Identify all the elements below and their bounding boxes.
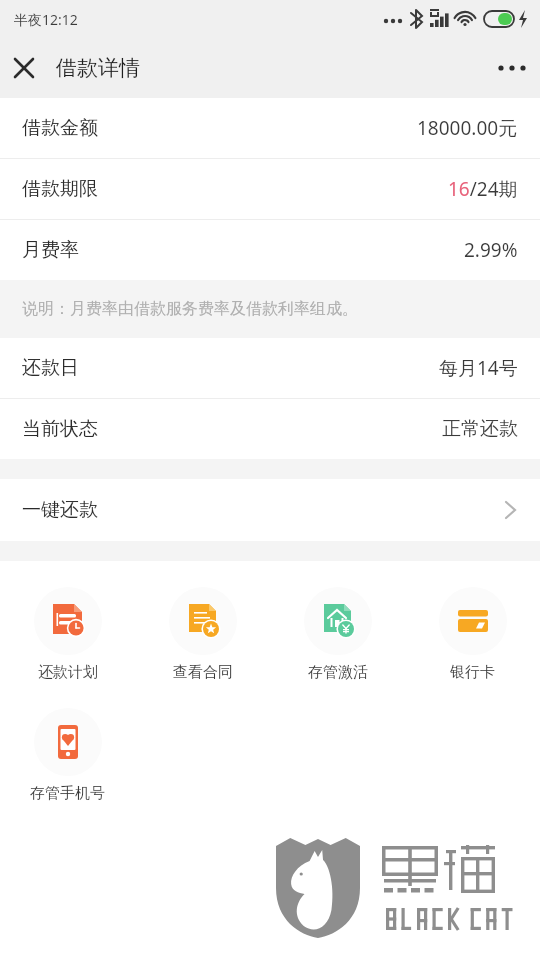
staticText: 银行卡	[450, 663, 495, 682]
button[interactable]: 一键还款	[0, 479, 540, 541]
staticText: 还款计划	[38, 663, 98, 682]
button[interactable]: 更多	[484, 40, 540, 96]
staticText: 当前状态	[22, 417, 98, 441]
staticText: 借款详情	[56, 55, 140, 81]
staticText: 说明：月费率由借款服务费率及借款利率组成。	[22, 299, 358, 319]
staticText: 查看合同	[173, 663, 233, 682]
staticText: 还款日	[22, 356, 79, 380]
button[interactable]: 还款计划	[0, 583, 135, 686]
staticText: 16/24期	[448, 176, 518, 202]
button[interactable]: 当前状态	[0, 399, 540, 459]
button[interactable]: 借款期限	[0, 159, 540, 219]
button[interactable]: 存管激活	[270, 583, 405, 686]
staticText: 月费率	[22, 238, 79, 262]
button[interactable]: 借款金额	[0, 98, 540, 158]
button[interactable]: 还款日	[0, 338, 540, 398]
staticText: 存管手机号	[30, 784, 105, 803]
staticText: 一键还款	[22, 498, 98, 522]
staticText: 存管激活	[308, 663, 368, 682]
staticText: 18000.00元	[417, 115, 518, 141]
button[interactable]: 月费率	[0, 220, 540, 280]
staticText: 正常还款	[442, 417, 518, 441]
staticText: 半夜12:12	[14, 10, 78, 29]
button[interactable]: 查看合同	[135, 583, 270, 686]
staticText: 2.99%	[464, 237, 518, 263]
staticText: 借款金额	[22, 116, 98, 140]
button[interactable]: 存管手机号	[0, 704, 135, 807]
button[interactable]: 银行卡	[405, 583, 540, 686]
staticText: 每月14号	[439, 355, 518, 381]
staticText: 借款期限	[22, 177, 98, 201]
button[interactable]: 关闭	[0, 44, 48, 92]
